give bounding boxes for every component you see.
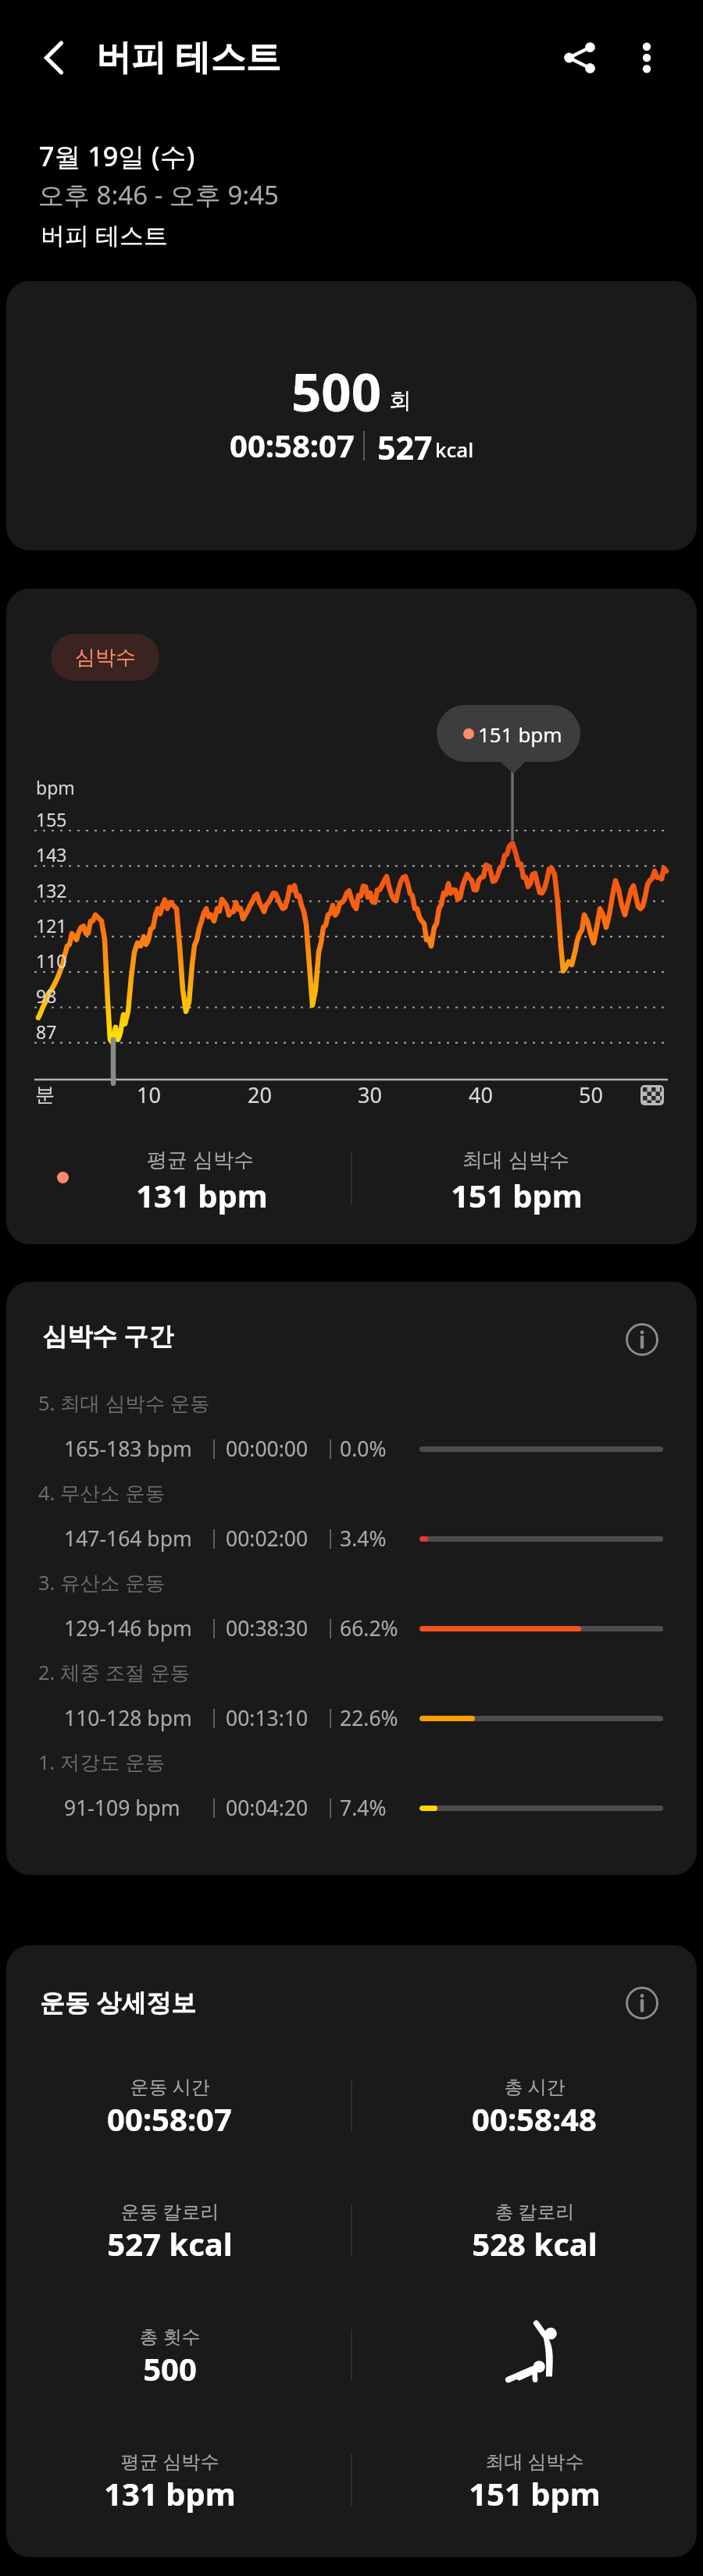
staticText: 평균 심박수 <box>147 1145 254 1173</box>
staticText: 30 <box>358 1080 382 1109</box>
staticText: 00:02:00 <box>226 1525 309 1553</box>
staticText: 131 bpm <box>104 2472 236 2514</box>
staticText: 2. 체중 조절 운동 <box>38 1659 191 1686</box>
staticText: 총 칼로리 <box>494 2198 575 2224</box>
staticText: 00:58:48 <box>472 2097 597 2140</box>
staticText: 20 <box>248 1080 272 1109</box>
staticText: 50 <box>579 1080 603 1109</box>
staticText: 87 <box>36 1019 57 1044</box>
staticText: 500 <box>291 355 381 426</box>
staticText: 151 bpm <box>478 720 562 748</box>
staticText: 최대 심박수 <box>462 1145 569 1173</box>
staticText: 심박수 <box>75 645 136 671</box>
staticText: 4. 무산소 운동 <box>38 1479 166 1507</box>
staticText: 528 kcal <box>472 2222 598 2265</box>
button[interactable]: Share <box>556 34 603 81</box>
staticText: 버피 테스트 <box>41 219 169 251</box>
staticText: 3.4% <box>340 1525 387 1553</box>
staticText: 151 bpm <box>451 1174 583 1216</box>
staticText: 165-183 bpm <box>64 1435 192 1463</box>
staticText: 98 <box>36 984 57 1008</box>
staticText: 회 <box>389 386 412 415</box>
staticText: 121 <box>36 913 67 938</box>
button[interactable]: Back <box>27 39 80 76</box>
staticText: 22.6% <box>340 1704 398 1732</box>
staticText: 00:38:30 <box>226 1614 309 1642</box>
staticText: 129-146 bpm <box>64 1614 192 1642</box>
staticText: 0.0% <box>340 1435 387 1463</box>
staticText: 132 <box>36 878 67 902</box>
staticText: 00:00:00 <box>226 1435 309 1463</box>
staticText: bpm <box>36 775 75 799</box>
button[interactable]: More options <box>623 34 670 81</box>
staticText: 10 <box>137 1080 161 1109</box>
staticText: 버피 테스트 <box>96 32 281 80</box>
staticText: 최대 심박수 <box>485 2448 584 2474</box>
staticText: 527 <box>377 425 433 469</box>
staticText: 오후 8:46 - 오후 9:45 <box>38 177 279 212</box>
staticText: 5. 최대 심박수 운동 <box>38 1389 210 1417</box>
staticText: 7월 19일 (수) <box>39 138 195 174</box>
staticText: 110 <box>36 948 67 973</box>
staticText: 155 <box>36 807 67 831</box>
staticText: 총 시간 <box>504 2073 566 2099</box>
staticText: 143 <box>36 842 67 866</box>
staticText: 분 <box>35 1083 55 1107</box>
staticText: 심박수 구간 <box>42 1318 174 1353</box>
button[interactable]: Info <box>620 1318 664 1361</box>
button[interactable] <box>437 705 580 762</box>
staticText: 131 bpm <box>136 1174 268 1216</box>
staticText: 운동 칼로리 <box>120 2198 219 2224</box>
staticText: 00:58:07 <box>107 2097 232 2140</box>
staticText: 40 <box>469 1080 493 1109</box>
staticText: 00:58:07 <box>230 424 355 466</box>
staticText: 500 <box>143 2347 197 2389</box>
staticText: 91-109 bpm <box>64 1794 180 1822</box>
staticText: 151 bpm <box>469 2472 601 2514</box>
staticText: 평균 심박수 <box>120 2448 219 2474</box>
staticText: 1. 저강도 운동 <box>38 1749 166 1776</box>
staticText: 00:04:20 <box>226 1794 309 1822</box>
staticText: 운동 시간 <box>130 2073 210 2099</box>
staticText: 7.4% <box>340 1794 387 1822</box>
button[interactable]: 심박수 <box>51 634 159 681</box>
staticText: 147-164 bpm <box>64 1525 192 1553</box>
staticText: 운동 상세정보 <box>40 1985 197 2019</box>
staticText: 66.2% <box>340 1614 398 1642</box>
staticText: 00:13:10 <box>226 1704 309 1732</box>
staticText: 총 횟수 <box>139 2323 201 2349</box>
staticText: 110-128 bpm <box>64 1704 192 1732</box>
staticText: 3. 유산소 운동 <box>38 1569 166 1596</box>
staticText: 527 kcal <box>107 2222 233 2265</box>
staticText: kcal <box>435 436 474 463</box>
button[interactable]: Info <box>620 1981 664 2025</box>
